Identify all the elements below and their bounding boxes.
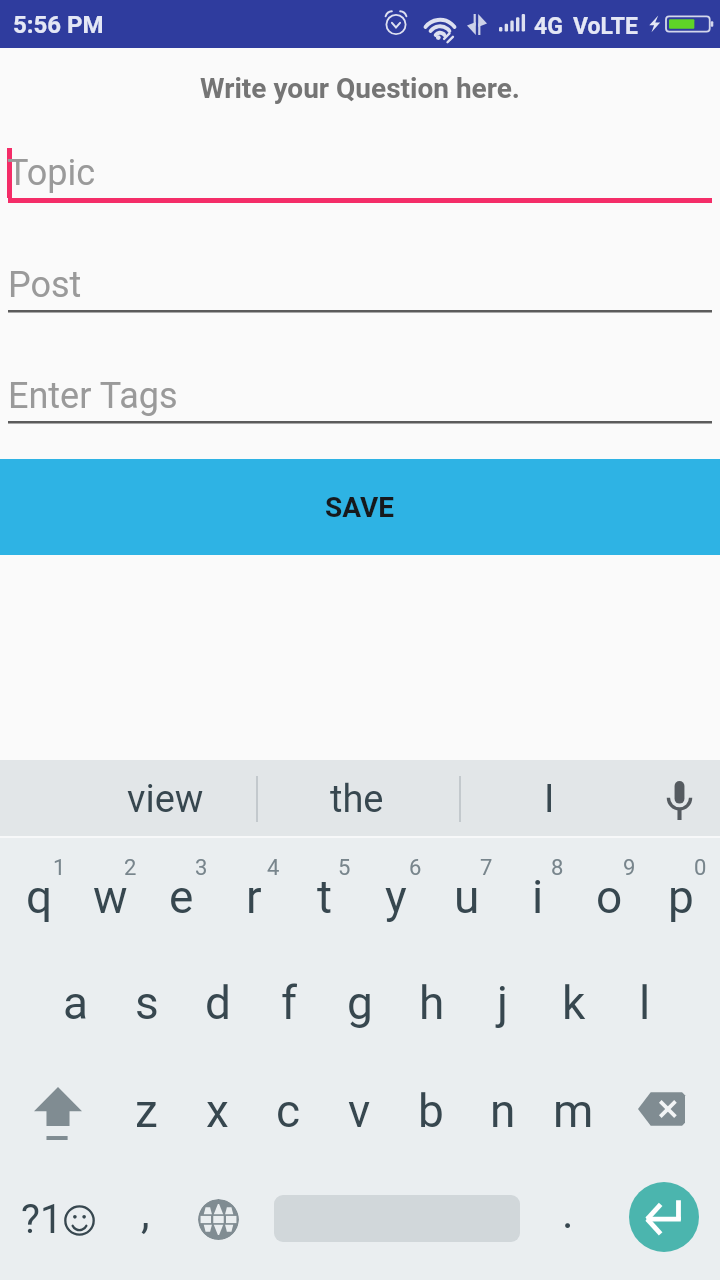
button[interactable]: Post — [0, 260, 720, 310]
button[interactable]: Change language — [178, 1159, 258, 1279]
button[interactable]: d — [182, 974, 253, 1080]
staticText: y — [385, 870, 407, 924]
staticText: Post — [8, 264, 82, 306]
button[interactable]: Enter Tags — [0, 371, 720, 421]
button[interactable]: . — [533, 1159, 603, 1279]
staticText: v — [348, 1084, 371, 1138]
button[interactable]: z — [111, 1082, 182, 1188]
staticText: w — [93, 870, 128, 924]
staticText: d — [205, 976, 231, 1030]
staticText: , — [141, 1187, 150, 1239]
staticText: i — [532, 870, 544, 924]
button[interactable]: ?1 — [0, 1159, 130, 1279]
staticText: VoLTE — [573, 13, 638, 40]
staticText: a — [63, 976, 89, 1030]
staticText: Topic — [7, 152, 96, 194]
button[interactable]: 9 — [574, 868, 645, 974]
button[interactable]: 1 — [4, 868, 75, 974]
staticText: 8 — [551, 855, 564, 881]
button[interactable]: l — [609, 974, 680, 1080]
button[interactable]: j — [467, 974, 538, 1080]
staticText: k — [562, 976, 586, 1030]
staticText: 9 — [623, 855, 636, 881]
button[interactable]: g — [324, 974, 395, 1080]
staticText: Enter Tags — [8, 375, 178, 417]
staticText: 0 — [694, 855, 707, 881]
button[interactable]: v — [324, 1082, 395, 1188]
staticText: u — [454, 870, 480, 924]
button[interactable]: h — [396, 974, 467, 1080]
button[interactable]: SAVE — [0, 459, 720, 555]
staticText: h — [419, 976, 445, 1030]
button[interactable]: Enter — [603, 1159, 720, 1279]
button[interactable]: the — [261, 760, 453, 838]
staticText: j — [497, 976, 509, 1030]
staticText: s — [135, 976, 159, 1030]
staticText: r — [246, 870, 262, 924]
staticText: 4 — [267, 855, 280, 881]
staticText: f — [281, 976, 297, 1030]
button[interactable]: Space — [258, 1159, 533, 1279]
staticText: 5 — [338, 855, 351, 881]
button[interactable]: f — [253, 974, 324, 1080]
staticText: b — [418, 1084, 444, 1138]
button[interactable]: m — [538, 1082, 609, 1188]
staticText: 4G — [534, 13, 563, 40]
button[interactable]: k — [538, 974, 609, 1080]
button[interactable]: Backspace — [609, 1028, 716, 1134]
button[interactable]: c — [253, 1082, 324, 1188]
staticText: p — [668, 870, 694, 924]
staticText: z — [135, 1084, 158, 1138]
staticText: 2 — [124, 855, 137, 881]
button[interactable]: Shift — [4, 1044, 111, 1150]
button[interactable]: b — [395, 1082, 466, 1188]
staticText: view — [127, 777, 204, 822]
staticText: Write your Question here. — [0, 72, 720, 105]
staticText: ?1 — [21, 1196, 63, 1243]
button[interactable]: view — [70, 760, 261, 838]
button[interactable]: 3 — [146, 868, 217, 974]
staticText: 6 — [409, 855, 422, 881]
button[interactable]: 5 — [289, 868, 360, 974]
button[interactable]: n — [467, 1082, 538, 1188]
staticText: q — [26, 870, 53, 924]
button[interactable]: 4 — [218, 868, 289, 974]
staticText: l — [639, 976, 651, 1030]
staticText: e — [169, 870, 194, 924]
button[interactable]: 0 — [645, 868, 716, 974]
button[interactable]: 8 — [502, 868, 573, 974]
staticText: n — [490, 1084, 516, 1138]
staticText: 5:56 PM — [13, 11, 104, 39]
button[interactable]: , — [110, 1159, 180, 1279]
button[interactable]: s — [111, 974, 182, 1080]
button[interactable]: 7 — [431, 868, 502, 974]
staticText: 1 — [53, 855, 66, 881]
staticText: I — [544, 777, 555, 822]
staticText: 7 — [480, 855, 493, 881]
staticText: the — [330, 777, 384, 822]
staticText: x — [206, 1084, 229, 1138]
staticText: . — [562, 1187, 574, 1239]
button[interactable]: a — [40, 974, 111, 1080]
staticText: 3 — [195, 855, 208, 881]
staticText: o — [596, 870, 623, 924]
button[interactable]: Voice input — [645, 760, 713, 838]
button[interactable]: 2 — [75, 868, 146, 974]
staticText: g — [347, 976, 373, 1030]
button[interactable]: 6 — [360, 868, 431, 974]
staticText: SAVE — [325, 491, 395, 524]
button[interactable]: I — [453, 760, 645, 838]
staticText: t — [317, 870, 333, 924]
button[interactable]: Topic — [0, 148, 720, 198]
button[interactable]: x — [182, 1082, 253, 1188]
staticText: c — [276, 1084, 301, 1138]
staticText: m — [553, 1084, 594, 1138]
